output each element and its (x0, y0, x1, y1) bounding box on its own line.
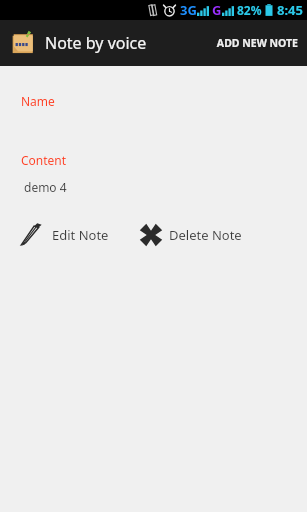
staticText: Edit Note (52, 226, 109, 244)
staticText: Note by voice (45, 32, 147, 54)
staticText: Name (21, 93, 55, 109)
button[interactable]: ADD NEW NOTE (207, 28, 307, 58)
staticText: 82% (237, 2, 262, 18)
staticText: Content (21, 152, 67, 168)
button[interactable]: Edit Note (16, 218, 111, 252)
staticText: demo 4 (24, 179, 67, 195)
staticText: 8:45 (277, 1, 303, 19)
staticText: 3G (180, 1, 197, 19)
staticText: ADD NEW NOTE (216, 36, 298, 50)
button[interactable]: Delete Note (137, 219, 244, 251)
staticText: G (212, 1, 222, 19)
other: Delete Note (139, 223, 163, 247)
other: Edit Note (18, 222, 44, 248)
staticText: Delete Note (169, 226, 242, 244)
